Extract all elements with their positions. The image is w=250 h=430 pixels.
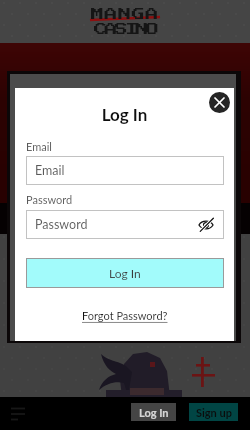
button[interactable]: Log In [131, 403, 176, 421]
staticText: Log In [139, 406, 169, 419]
staticText: Log In [109, 266, 141, 280]
button[interactable]: Close [209, 92, 230, 113]
staticText: MANGA [91, 8, 160, 21]
staticText: Password [35, 217, 88, 232]
staticText: Password [26, 193, 73, 206]
staticText: Email [35, 163, 65, 178]
button[interactable]: Email [26, 156, 224, 185]
button[interactable]: Forgot Password? [82, 309, 168, 322]
button[interactable]: Show password [197, 216, 215, 234]
button[interactable]: Log In [27, 259, 223, 287]
staticText: Log In [15, 104, 234, 124]
button[interactable]: Password [26, 210, 224, 239]
staticText: CASINO [94, 23, 157, 36]
staticText: Sign up [196, 406, 232, 419]
staticText: Email [26, 140, 52, 153]
button[interactable]: Sign up [189, 403, 238, 421]
button[interactable]: Menu [6, 402, 30, 426]
